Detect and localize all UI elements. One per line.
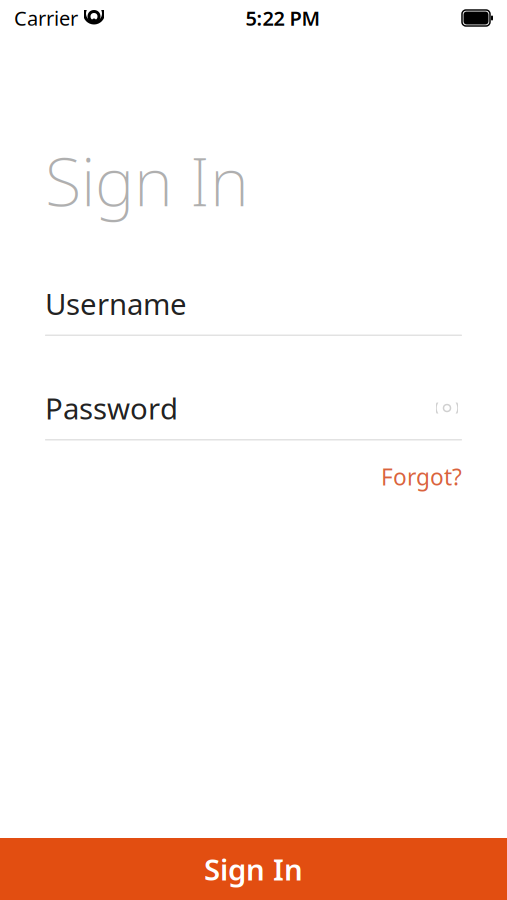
staticText: Forgot? (381, 461, 462, 492)
staticText: 5:22 PM (245, 5, 320, 31)
button[interactable]: Show password (432, 395, 462, 421)
staticText: Sign In (45, 136, 249, 224)
staticText: Sign In (204, 849, 303, 888)
button[interactable]: Sign In (0, 838, 507, 900)
staticText: Carrier (14, 5, 78, 31)
button[interactable]: Forgot? (381, 455, 462, 498)
staticText: Password (45, 389, 178, 428)
staticText: Username (45, 284, 187, 323)
